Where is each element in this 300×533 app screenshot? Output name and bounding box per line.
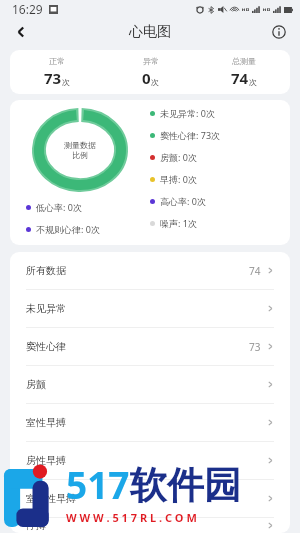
button[interactable]: 未见异常 <box>10 290 290 328</box>
staticText: 517 <box>66 459 130 509</box>
staticText: 0 <box>142 68 151 88</box>
staticText: 室上性早搏 <box>26 492 267 505</box>
button[interactable]: 停搏 <box>10 518 290 533</box>
staticText: 心电图 <box>129 23 171 41</box>
staticText: 早搏: 0次 <box>160 173 197 185</box>
staticText: 74 <box>249 264 261 278</box>
staticText: 总测量 <box>232 56 256 66</box>
staticText: 室性早搏 <box>26 416 267 429</box>
button[interactable]: 所有数据 <box>10 252 290 290</box>
staticText: 停搏 <box>26 519 267 532</box>
button[interactable]: Info <box>264 18 294 45</box>
staticText: 异常 <box>143 56 159 66</box>
staticText: 测量数据 <box>64 140 96 150</box>
button[interactable]: Back <box>6 18 36 45</box>
button[interactable]: 窦性心律 <box>10 328 290 366</box>
button[interactable]: 房颤 <box>10 366 290 404</box>
staticText: 次 <box>151 77 159 87</box>
staticText: 73 <box>44 68 62 88</box>
staticText: 次 <box>62 77 70 87</box>
staticText: 低心率: 0次 <box>36 201 82 213</box>
staticText: 房性早搏 <box>26 454 267 467</box>
staticText: 不规则心律: 0次 <box>36 223 100 235</box>
staticText: 噪声: 1次 <box>160 217 197 229</box>
staticText: 房颤: 0次 <box>160 151 197 163</box>
staticText: 未见异常: 0次 <box>160 107 215 119</box>
staticText: 软件园 <box>130 462 241 509</box>
button[interactable]: 室上性早搏 <box>10 480 290 518</box>
staticText: 73 <box>249 340 261 354</box>
staticText: 正常 <box>49 56 65 66</box>
staticText: 窦性心律 <box>26 340 249 353</box>
staticText: 房颤 <box>26 378 267 391</box>
staticText: 所有数据 <box>26 264 249 277</box>
staticText: 次 <box>249 77 257 87</box>
staticText: 比例 <box>72 150 88 160</box>
staticText: 未见异常 <box>26 302 267 315</box>
button[interactable]: 室性早搏 <box>10 404 290 442</box>
button[interactable]: 房性早搏 <box>10 442 290 480</box>
staticText: 74 <box>231 68 249 88</box>
staticText: 16:29 <box>12 1 43 17</box>
staticText: 窦性心律: 73次 <box>160 129 221 141</box>
staticText: 高心率: 0次 <box>160 195 206 207</box>
staticText: W W W . 5 1 7 R L . C O M <box>66 510 197 525</box>
